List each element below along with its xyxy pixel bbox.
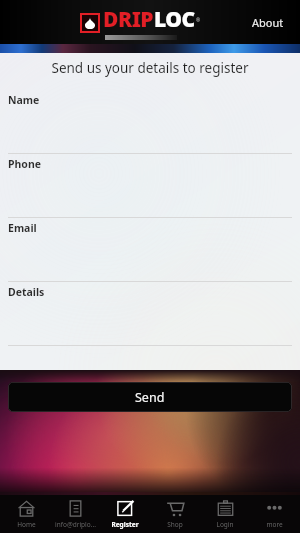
staticText: Phone	[8, 157, 42, 171]
button[interactable]: Login	[201, 492, 249, 533]
staticText: Send us your details to register	[0, 59, 300, 77]
staticText: Login	[216, 520, 234, 529]
staticText: Shop	[167, 520, 183, 529]
button[interactable]: Phone	[0, 154, 300, 218]
button[interactable]: info@driplo...	[51, 492, 99, 533]
staticText: Details	[8, 285, 45, 299]
staticText: About	[252, 15, 284, 30]
button[interactable]: Name	[0, 90, 300, 154]
staticText: info@driplo...	[55, 520, 96, 529]
staticText: Name	[8, 93, 40, 107]
button[interactable]: Home	[2, 492, 50, 533]
button[interactable]: Shop	[151, 492, 199, 533]
staticText: Email	[8, 221, 37, 235]
staticText: Register	[111, 520, 139, 529]
staticText: Send	[135, 389, 165, 406]
button[interactable]: About	[246, 9, 290, 36]
button[interactable]: Send	[8, 382, 292, 412]
staticText: LOC	[154, 5, 195, 34]
button[interactable]: Details	[0, 282, 300, 346]
button[interactable]: more	[250, 492, 298, 533]
staticText: Home	[17, 520, 36, 529]
staticText: DRIP	[103, 5, 154, 34]
button[interactable]: Register	[101, 492, 149, 533]
staticText: ®	[196, 17, 201, 24]
staticText: more	[266, 520, 283, 529]
button[interactable]: Email	[0, 218, 300, 282]
